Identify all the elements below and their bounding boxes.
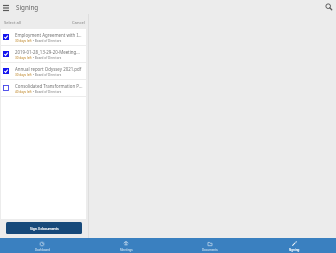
staticText: • Board of Directors [32,39,62,43]
staticText: Sign 3 documents [30,226,59,231]
button[interactable]: Checked [2,33,10,41]
button[interactable]: Checked [1,46,86,62]
staticText: Annual report Odyssey 2021.pdf [15,66,82,72]
button[interactable]: Documents [168,238,252,253]
staticText: • Board of Directors [32,73,62,77]
staticText: • Board of Directors [32,56,62,60]
button[interactable]: Meetings [84,238,168,253]
staticText: Meetings [120,248,133,252]
staticText: 40 days left [15,90,32,94]
button[interactable]: Checked [1,63,86,79]
button[interactable]: Menu [1,2,11,12]
button[interactable]: Unchecked [1,80,86,96]
staticText: Signing [289,248,300,252]
button[interactable]: Select all [4,20,21,26]
staticText: • Board of Directors [32,90,62,94]
button[interactable]: Search [324,2,334,12]
staticText: 30 days left [15,56,32,60]
staticText: Employment Agreement with Ind... [15,32,83,38]
button[interactable]: Signing [252,238,336,253]
button[interactable]: Dashboard [0,238,84,253]
staticText: Signing [16,3,39,12]
button[interactable]: Checked [2,67,10,75]
staticText: Consolidated Transformation Pla... [15,83,83,89]
button[interactable]: Cancel [72,20,85,26]
staticText: 30 days left [15,73,32,77]
button[interactable]: Checked [1,29,86,45]
staticText: Documents [202,248,218,252]
staticText: 30 days left [15,39,32,43]
button[interactable]: Sign 3 documents [6,222,82,234]
button[interactable]: Checked [2,50,10,58]
button[interactable]: Unchecked [2,84,10,92]
staticText: Dashboard [35,248,50,252]
staticText: 2019-01-28_13-29-20-MeetingMin... [15,49,83,55]
